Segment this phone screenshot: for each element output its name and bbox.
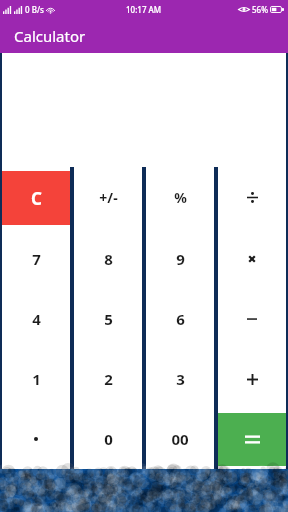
button[interactable]: 00 <box>146 409 214 469</box>
staticText: 4 <box>32 309 41 329</box>
staticText: 5 <box>104 309 113 329</box>
button[interactable]: Equals <box>218 413 286 466</box>
button[interactable]: Clear <box>2 171 70 225</box>
button[interactable]: 8 <box>74 228 142 289</box>
button[interactable]: Add <box>218 349 286 409</box>
button[interactable]: 3 <box>146 349 214 409</box>
button[interactable]: 4 <box>2 289 70 349</box>
staticText: % <box>174 188 187 207</box>
button[interactable]: +/- <box>74 167 142 228</box>
button[interactable]: % <box>146 167 214 228</box>
staticText: 56% <box>252 4 268 15</box>
button[interactable]: Divide <box>218 167 286 228</box>
staticText: Calculator <box>14 26 86 46</box>
staticText: +/- <box>99 188 118 207</box>
staticText: 8 <box>104 249 113 269</box>
staticText: 1 <box>32 369 41 389</box>
staticText: 7 <box>32 249 41 269</box>
staticText: 9 <box>176 249 185 269</box>
staticText: 10:17 AM <box>126 4 162 15</box>
button[interactable]: 7 <box>2 228 70 289</box>
button[interactable]: 5 <box>74 289 142 349</box>
staticText: 2 <box>104 369 113 389</box>
button[interactable]: 1 <box>2 349 70 409</box>
button[interactable]: Multiply <box>218 228 286 289</box>
button[interactable]: 0 <box>74 409 142 469</box>
staticText: 0 B/s <box>25 4 44 15</box>
button[interactable]: Decimal point <box>2 409 70 469</box>
staticText: 00 <box>171 429 189 449</box>
button[interactable]: 2 <box>74 349 142 409</box>
staticText: 6 <box>176 309 185 329</box>
staticText: 0 <box>104 429 113 449</box>
staticText: 3 <box>176 369 185 389</box>
button[interactable]: 9 <box>146 228 214 289</box>
staticText: C <box>31 187 42 210</box>
button[interactable]: 6 <box>146 289 214 349</box>
button[interactable]: Subtract <box>218 289 286 349</box>
